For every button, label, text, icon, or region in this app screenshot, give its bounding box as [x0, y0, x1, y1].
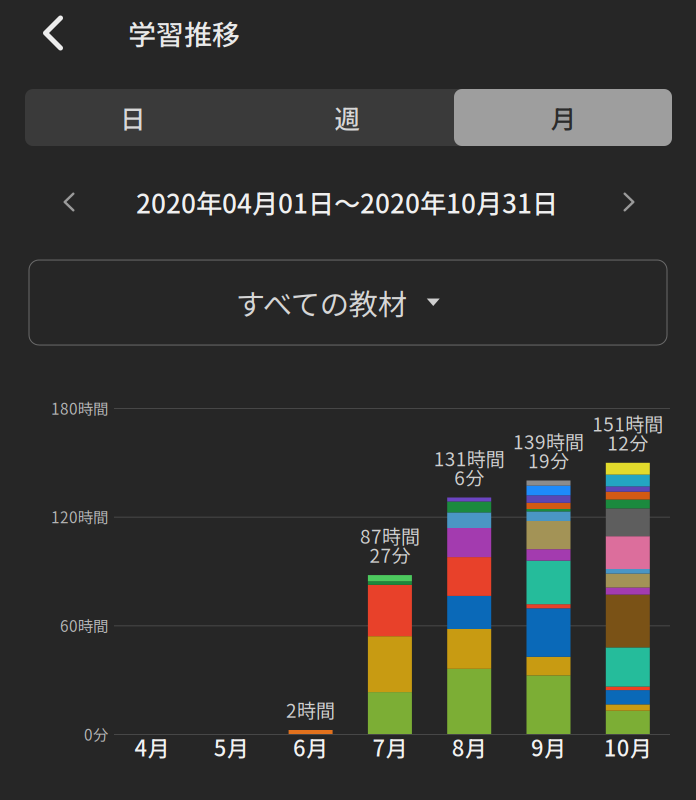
staticText: 月 [550, 99, 575, 136]
staticText: 6分 [454, 463, 484, 491]
staticText: 週 [334, 99, 359, 136]
staticText: 87時間 [360, 522, 420, 549]
staticText: 8月 [452, 731, 487, 763]
button[interactable]: Back [22, 2, 84, 64]
staticText: 180時間 [51, 397, 108, 419]
button[interactable]: 月 [454, 89, 672, 146]
staticText: 139時間 [513, 427, 584, 455]
staticText: 2時間 [286, 696, 335, 723]
staticText: 12分 [607, 429, 648, 456]
staticText: 60時間 [60, 614, 108, 636]
button[interactable]: Next period [602, 178, 656, 226]
button[interactable]: すべての教材 [29, 260, 667, 345]
button[interactable]: 週 [240, 89, 454, 146]
staticText: 27分 [369, 541, 410, 568]
staticText: 131時間 [434, 444, 505, 472]
staticText: すべての教材 [236, 281, 407, 324]
staticText: 5月 [214, 731, 249, 763]
staticText: 2020年04月01日〜2020年10月31日 [136, 183, 558, 221]
staticText: 19分 [528, 446, 569, 474]
staticText: 120時間 [51, 506, 108, 528]
button[interactable]: Previous period [42, 178, 96, 226]
staticText: 7月 [372, 731, 407, 763]
staticText: 151時間 [592, 410, 663, 437]
staticText: 9月 [531, 731, 566, 763]
staticText: 6月 [293, 731, 328, 763]
staticText: 0分 [84, 723, 108, 745]
staticText: 日 [120, 99, 145, 136]
staticText: 4月 [134, 731, 169, 763]
staticText: 学習推移 [128, 13, 240, 53]
staticText: 10月 [604, 731, 652, 763]
button[interactable]: 日 [25, 89, 240, 146]
